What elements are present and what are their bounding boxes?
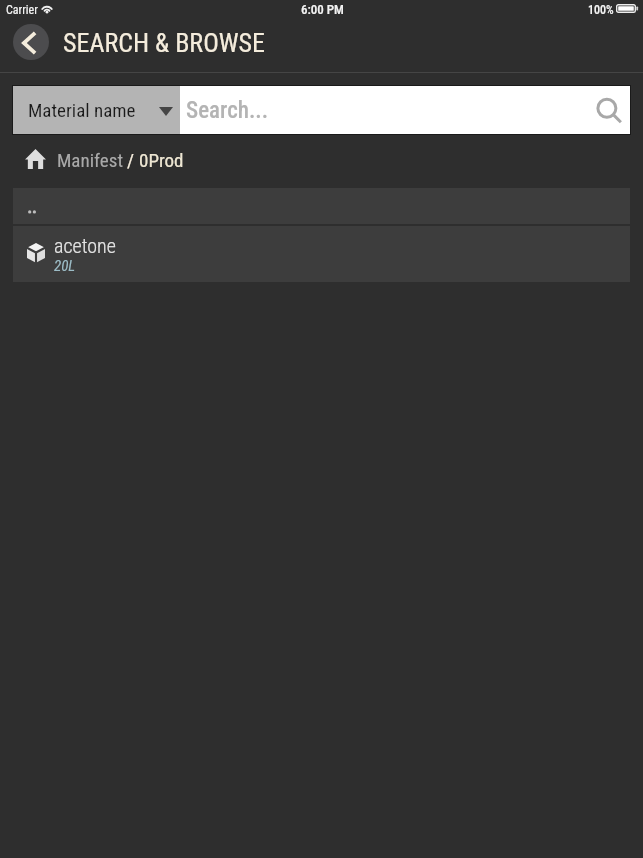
button[interactable]: Search... xyxy=(180,86,630,134)
staticText: / xyxy=(127,149,135,171)
staticText: 100% xyxy=(588,3,614,17)
button[interactable]: Home xyxy=(25,149,46,169)
staticText: Manifest xyxy=(57,149,123,171)
staticText: Material name xyxy=(28,99,136,121)
button[interactable] xyxy=(13,188,630,224)
staticText: Search... xyxy=(186,97,269,124)
button[interactable]: Back xyxy=(13,24,49,60)
staticText: 0Prod xyxy=(139,149,184,171)
staticText: Carrier xyxy=(6,3,38,17)
staticText: 6:00 PM xyxy=(301,2,344,17)
button[interactable]: 0Prod xyxy=(139,143,184,177)
button[interactable]: Manifest xyxy=(57,143,123,177)
staticText: 20L xyxy=(54,257,76,275)
staticText: SEARCH & BROWSE xyxy=(63,28,265,58)
button[interactable]: acetone xyxy=(13,226,630,282)
staticText: acetone xyxy=(54,234,116,257)
button[interactable]: Material name xyxy=(13,86,180,134)
